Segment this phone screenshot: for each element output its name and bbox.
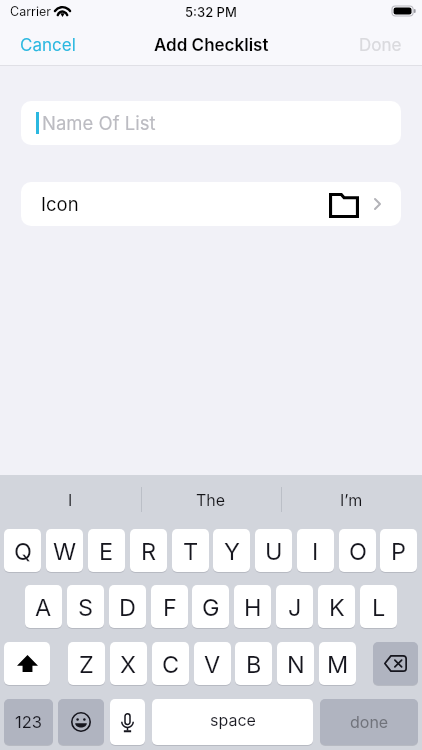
button[interactable]: J (276, 585, 313, 628)
button[interactable]: L (360, 585, 397, 628)
button[interactable]: E (88, 529, 125, 572)
button[interactable]: Icon (21, 182, 401, 226)
button[interactable]: R (130, 529, 167, 572)
staticText: 123 (15, 712, 42, 732)
button[interactable]: 123 (4, 699, 53, 745)
button[interactable]: space (152, 699, 313, 745)
button[interactable]: D (109, 585, 146, 628)
staticText: H (244, 593, 262, 621)
staticText: K (329, 593, 345, 621)
button[interactable]: X (110, 642, 147, 685)
button[interactable]: Done (337, 27, 422, 64)
button[interactable]: G (192, 585, 229, 628)
button[interactable]: done (320, 699, 418, 745)
staticText: Add Checklist (154, 35, 269, 56)
button[interactable]: T (172, 529, 209, 572)
staticText: D (119, 593, 136, 621)
button[interactable]: Name Of List (21, 101, 401, 145)
button[interactable]: Emoji (58, 699, 104, 745)
button[interactable]: I (0, 475, 140, 528)
button[interactable]: B (235, 642, 272, 685)
button[interactable]: W (46, 529, 83, 572)
staticText: V (204, 650, 221, 678)
button[interactable]: Backspace (373, 642, 418, 685)
button[interactable]: Dictate (110, 699, 145, 745)
staticText: Cancel (20, 35, 76, 56)
staticText: Carrier (10, 4, 51, 19)
staticText: X (120, 650, 137, 678)
button[interactable]: Y (213, 529, 250, 572)
staticText: done (350, 712, 389, 731)
button[interactable]: The (140, 475, 281, 528)
button[interactable]: Z (68, 642, 105, 685)
button[interactable]: M (319, 642, 356, 685)
button[interactable]: V (194, 642, 231, 685)
staticText: J (288, 593, 302, 621)
staticText: C (162, 650, 180, 678)
button[interactable]: I (297, 529, 334, 572)
staticText: U (265, 537, 283, 565)
staticText: Name Of List (42, 112, 156, 134)
staticText: space (210, 710, 256, 729)
button[interactable]: I’m (281, 475, 422, 528)
button[interactable]: A (25, 585, 62, 628)
staticText: S (78, 593, 94, 621)
staticText: Q (14, 537, 32, 565)
staticText: G (202, 593, 220, 621)
button[interactable]: P (380, 529, 417, 572)
staticText: Z (79, 650, 94, 678)
staticText: W (53, 537, 77, 565)
button[interactable]: K (318, 585, 355, 628)
staticText: Icon (41, 193, 79, 215)
staticText: I (312, 537, 319, 565)
staticText: Y (224, 537, 240, 565)
button[interactable]: U (255, 529, 292, 572)
staticText: F (163, 593, 177, 621)
staticText: I (68, 490, 73, 509)
staticText: Done (359, 35, 402, 56)
staticText: L (372, 593, 386, 621)
staticText: A (35, 593, 52, 621)
staticText: The (196, 490, 226, 509)
staticText: M (327, 650, 349, 678)
staticText: B (246, 650, 262, 678)
button[interactable]: Cancel (0, 27, 98, 64)
button[interactable]: Shift (4, 642, 50, 685)
button[interactable]: O (339, 529, 376, 572)
staticText: R (141, 537, 157, 565)
button[interactable]: C (152, 642, 189, 685)
staticText: I’m (340, 490, 363, 509)
staticText: N (287, 650, 305, 678)
button[interactable]: H (234, 585, 271, 628)
staticText: E (99, 537, 114, 565)
button[interactable]: Q (4, 529, 41, 572)
button[interactable]: F (151, 585, 188, 628)
button[interactable]: N (277, 642, 314, 685)
staticText: O (349, 537, 367, 565)
staticText: P (391, 537, 407, 565)
button[interactable]: S (67, 585, 104, 628)
staticText: T (183, 537, 199, 565)
staticText: 5:32 PM (185, 4, 237, 20)
